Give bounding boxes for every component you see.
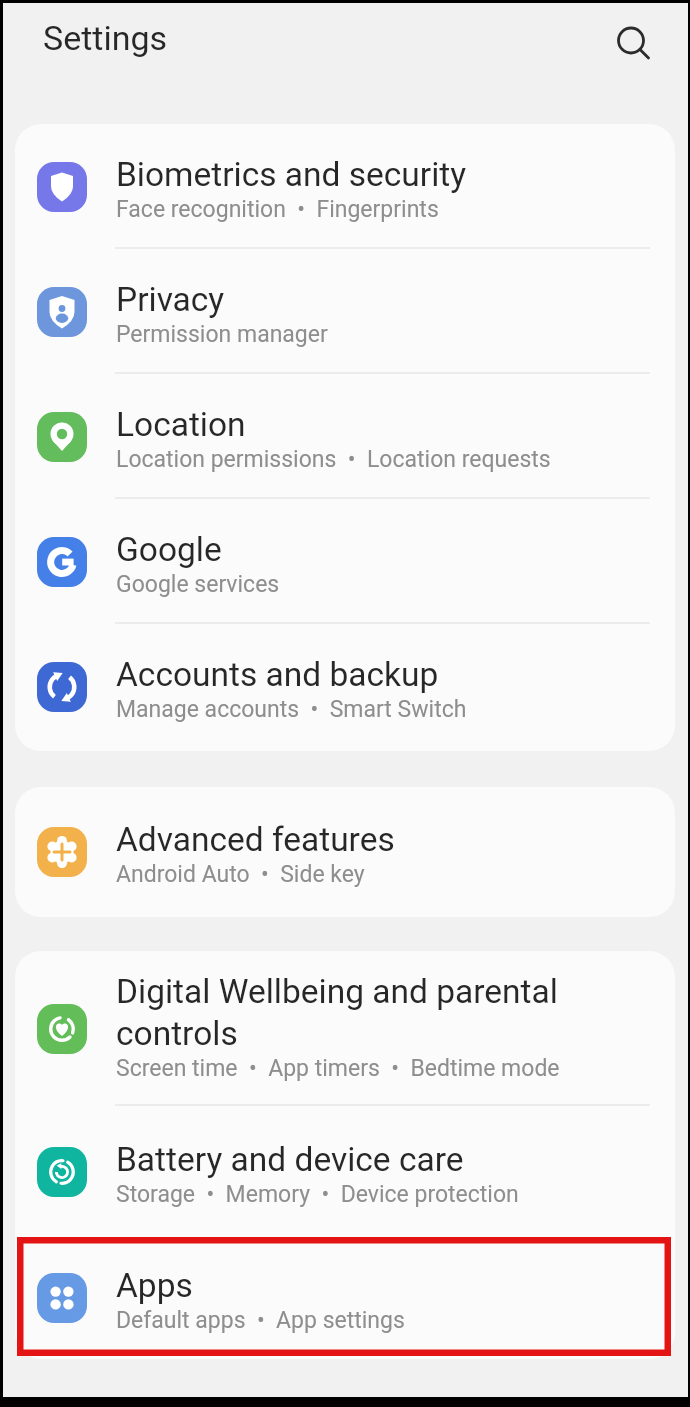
staticText: Android Auto • Side key bbox=[116, 861, 365, 888]
staticText: Google services bbox=[116, 571, 280, 598]
button[interactable]: Accounts and backup bbox=[15, 624, 675, 749]
button[interactable]: Apps bbox=[15, 1237, 675, 1359]
staticText: Privacy bbox=[116, 280, 225, 319]
staticText: Storage • Memory • Device protection bbox=[116, 1181, 519, 1208]
button[interactable]: Google bbox=[15, 499, 675, 624]
staticText: Digital Wellbeing and parental controls bbox=[116, 972, 558, 1053]
staticText: Battery and device care bbox=[116, 1140, 464, 1179]
button[interactable]: Advanced features bbox=[15, 787, 675, 917]
staticText: Default apps • App settings bbox=[116, 1307, 405, 1334]
staticText: Permission manager bbox=[116, 321, 328, 348]
staticText: Settings bbox=[43, 18, 168, 58]
staticText: Screen time • App timers • Bedtime mode bbox=[116, 1055, 560, 1082]
staticText: Location permissions • Location requests bbox=[116, 446, 551, 473]
button[interactable]: Battery and device care bbox=[15, 1106, 675, 1237]
button[interactable]: Privacy bbox=[15, 249, 675, 374]
staticText: Face recognition • Fingerprints bbox=[116, 196, 439, 223]
button[interactable]: Digital Wellbeing and parental controls bbox=[15, 951, 675, 1106]
staticText: Advanced features bbox=[116, 820, 395, 859]
staticText: Biometrics and security bbox=[116, 155, 467, 194]
button[interactable]: Biometrics and security bbox=[15, 124, 675, 249]
button[interactable]: Location bbox=[15, 374, 675, 499]
button[interactable] bbox=[611, 18, 655, 62]
staticText: Location bbox=[116, 405, 246, 444]
staticText: Accounts and backup bbox=[116, 655, 439, 694]
staticText: Google bbox=[116, 530, 222, 569]
staticText: Apps bbox=[116, 1266, 193, 1305]
staticText: Manage accounts • Smart Switch bbox=[116, 696, 467, 723]
